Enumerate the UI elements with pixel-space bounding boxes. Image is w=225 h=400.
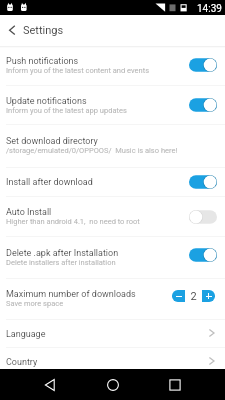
staticText: 14:39	[197, 3, 222, 15]
button[interactable]: Navigate up	[0, 15, 22, 46]
button[interactable]: Delete .apk after Installation	[0, 237, 225, 279]
staticText: Higher than android 4.1, no need to root	[6, 217, 140, 226]
button[interactable]: Home	[100, 372, 126, 398]
staticText: Maximum number of downloads	[6, 289, 136, 300]
button[interactable]: Recent apps	[162, 372, 188, 398]
staticText: Settings	[23, 24, 64, 37]
staticText: Inform you of the latest content and eve…	[6, 66, 149, 75]
button[interactable]: Push notifications	[0, 46, 225, 86]
staticText: Push notifications	[6, 56, 79, 67]
button[interactable]: Maximum number of downloads	[0, 279, 225, 320]
button[interactable]: Decrease	[172, 290, 185, 302]
button[interactable]: Back	[37, 372, 63, 398]
button[interactable]: Country	[0, 348, 225, 376]
staticText: Auto Install	[6, 207, 52, 218]
staticText: Language	[6, 329, 46, 340]
button[interactable]: Language	[0, 320, 225, 348]
button[interactable]: Install after download	[0, 168, 225, 197]
staticText: Inform you of the latest app updates	[6, 106, 127, 115]
staticText: Update notifications	[6, 96, 87, 107]
button[interactable]: Switch on	[189, 97, 217, 113]
button[interactable]: Set download directory	[0, 125, 225, 168]
button[interactable]: Auto Install	[0, 197, 225, 237]
staticText: Country	[6, 357, 38, 368]
staticText: Set download directory	[6, 136, 98, 147]
button[interactable]: Switch on	[189, 247, 217, 263]
staticText: Delete installers after installation	[6, 258, 116, 267]
staticText: Save more space	[6, 299, 64, 308]
button[interactable]: Switch off	[189, 209, 217, 225]
staticText: Install after download	[6, 177, 93, 188]
button[interactable]: Increase	[202, 290, 215, 302]
button[interactable]: Switch on	[189, 57, 217, 73]
button[interactable]: Switch on	[189, 174, 217, 190]
staticText: Delete .apk after Installation	[6, 248, 119, 259]
staticText: /storage/emulated/0/OPPOOS/ Music is als…	[6, 146, 178, 155]
button[interactable]: Update notifications	[0, 86, 225, 125]
staticText: 2	[185, 290, 202, 303]
